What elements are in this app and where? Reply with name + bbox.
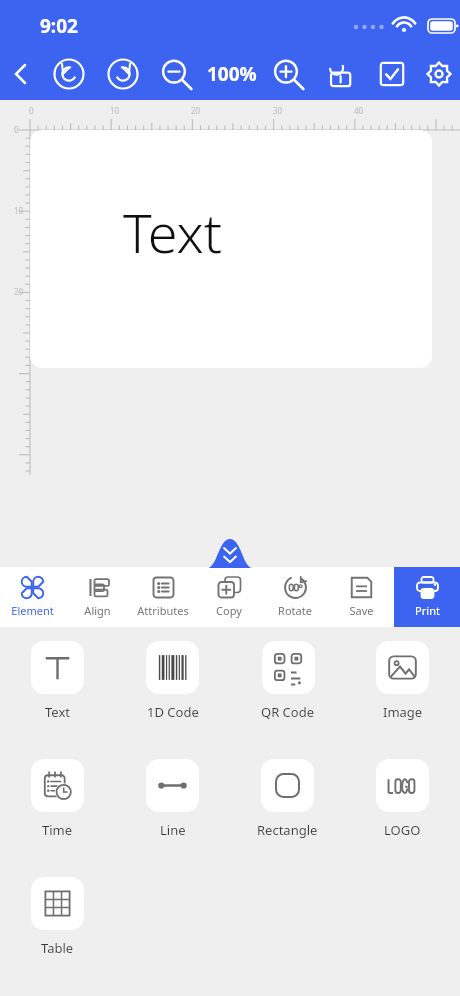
button[interactable]: Line <box>146 759 199 839</box>
button[interactable]: Rotate <box>262 567 328 627</box>
button[interactable]: LOGO <box>376 759 429 839</box>
button[interactable]: Attributes <box>130 567 196 627</box>
staticText: 0 <box>29 105 34 116</box>
staticText: Attributes <box>137 603 189 618</box>
staticText: 0 <box>14 124 19 135</box>
staticText: 1D Code <box>147 703 199 721</box>
button[interactable]: Zoom in <box>262 48 314 100</box>
button[interactable]: Time <box>31 759 84 839</box>
button[interactable]: Text <box>31 641 84 721</box>
staticText: Image <box>383 703 423 721</box>
button[interactable]: Rectangle <box>257 759 318 839</box>
button[interactable]: Undo <box>42 48 96 100</box>
staticText: Table <box>41 939 74 957</box>
staticText: 10 <box>110 105 120 116</box>
button[interactable]: Lock <box>314 48 366 100</box>
staticText: Align <box>84 603 111 618</box>
button[interactable]: Redo <box>96 48 150 100</box>
staticText: LOGO <box>384 821 421 839</box>
button[interactable]: Table <box>31 877 84 957</box>
button[interactable]: Collapse panel <box>208 539 252 568</box>
staticText: 9:02 <box>40 13 78 39</box>
staticText: Time <box>42 821 73 839</box>
staticText: Element <box>11 603 54 618</box>
button[interactable]: Print <box>394 567 460 627</box>
button[interactable]: 1D Code <box>146 641 199 721</box>
button[interactable]: Select all <box>366 48 418 100</box>
staticText: 40 <box>354 105 364 116</box>
staticText: Rotate <box>278 603 312 618</box>
staticText: Print <box>415 603 440 618</box>
button[interactable]: QR Code <box>261 641 315 721</box>
button[interactable]: 100% <box>202 48 262 100</box>
staticText: 10 <box>14 205 24 216</box>
staticText: Rectangle <box>257 821 318 839</box>
staticText: Save <box>349 603 374 618</box>
staticText: Copy <box>216 603 242 618</box>
staticText: Line <box>160 821 186 839</box>
staticText: 20 <box>191 105 201 116</box>
staticText: Text <box>45 703 70 721</box>
button[interactable]: Copy <box>196 567 262 627</box>
button[interactable]: Settings <box>418 48 460 100</box>
button[interactable]: Align <box>65 567 130 627</box>
button[interactable]: Image <box>376 641 429 721</box>
staticText: 20 <box>14 286 24 297</box>
button[interactable]: Zoom out <box>150 48 202 100</box>
staticText: 100% <box>207 61 257 87</box>
button[interactable]: Back <box>0 48 42 100</box>
staticText: 30 <box>273 105 283 116</box>
staticText: Text <box>123 195 223 269</box>
staticText: QR Code <box>261 703 315 721</box>
button[interactable]: Element <box>0 567 65 627</box>
button[interactable]: Save <box>328 567 394 627</box>
